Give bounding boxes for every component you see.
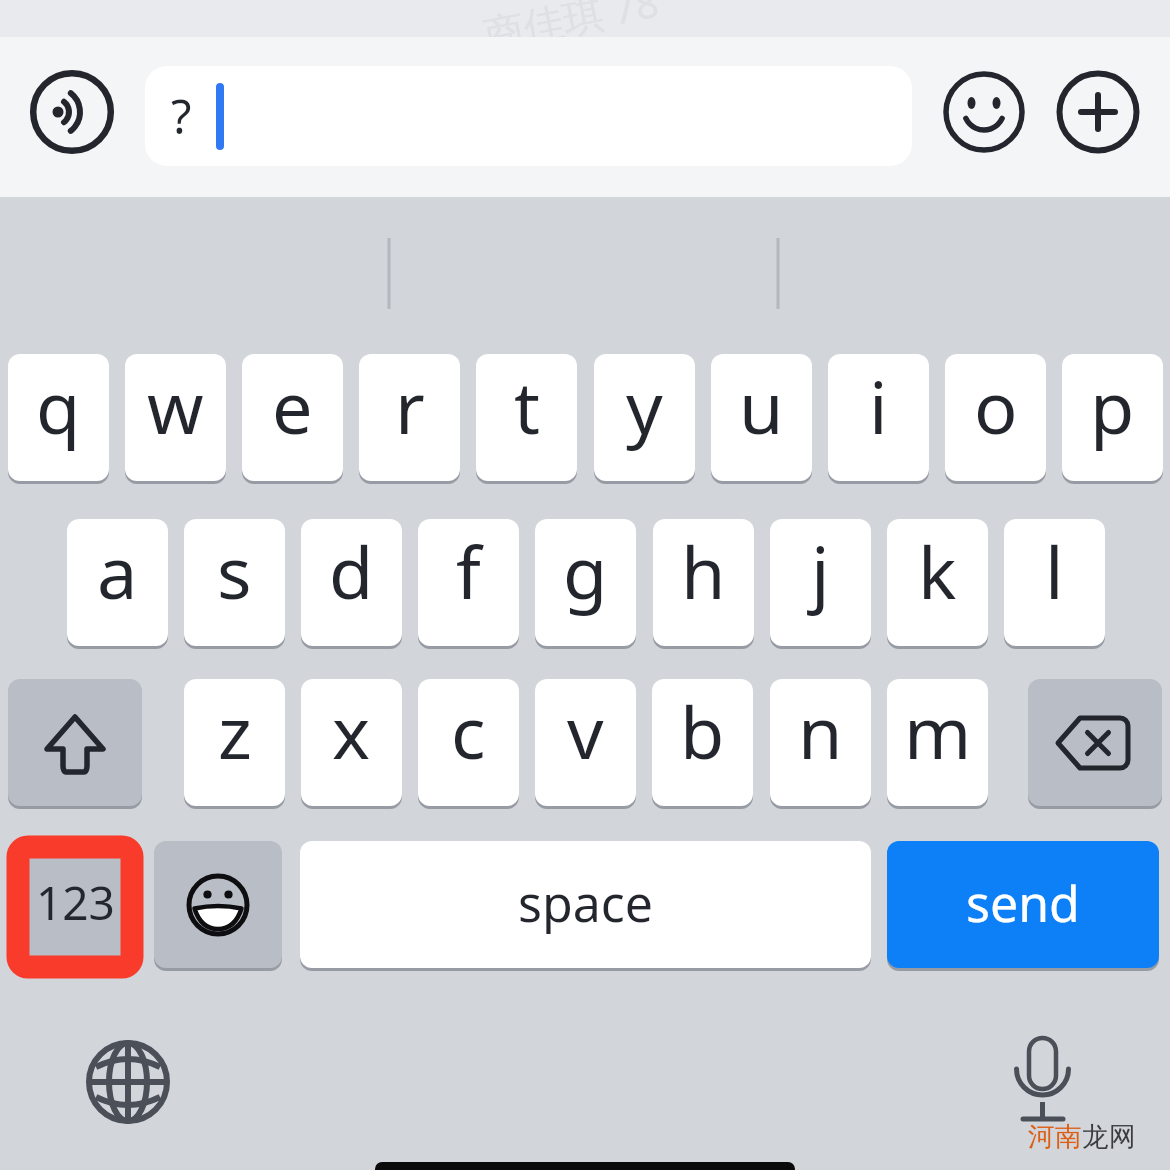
button[interactable]: z (184, 679, 285, 806)
staticText: n (798, 682, 843, 780)
button[interactable] (1058, 72, 1138, 152)
button[interactable]: m (887, 679, 988, 806)
staticText: b (680, 682, 725, 780)
staticText: z (218, 682, 252, 780)
staticText: i (869, 357, 888, 455)
staticText: 123 (36, 871, 115, 934)
button[interactable]: l (1004, 519, 1105, 646)
staticText: j (811, 522, 830, 620)
staticText: d (329, 522, 374, 620)
button[interactable]: h (653, 519, 754, 646)
staticText: e (272, 357, 313, 455)
button[interactable]: 123 (8, 841, 142, 968)
button[interactable]: b (652, 679, 753, 806)
staticText: h (681, 522, 726, 620)
button[interactable]: s (184, 519, 285, 646)
button[interactable] (8, 679, 142, 806)
button[interactable] (154, 841, 282, 968)
button[interactable]: g (535, 519, 636, 646)
staticText: p (1090, 357, 1135, 455)
staticText: y (626, 357, 663, 455)
button[interactable]: a (67, 519, 168, 646)
button[interactable]: j (770, 519, 871, 646)
button[interactable]: r (359, 354, 460, 481)
button[interactable]: q (8, 354, 109, 481)
button[interactable]: x (301, 679, 402, 806)
button[interactable] (32, 72, 112, 152)
button[interactable]: space (300, 841, 871, 968)
staticText: f (456, 522, 481, 620)
staticText: c (451, 682, 486, 780)
staticText: w (147, 357, 204, 455)
staticText: 河南 (1028, 1120, 1082, 1154)
staticText: v (567, 682, 604, 780)
button[interactable] (944, 72, 1024, 152)
button[interactable]: ? (145, 66, 912, 166)
button[interactable]: n (770, 679, 871, 806)
staticText: m (904, 682, 972, 780)
staticText: r (395, 357, 425, 455)
button[interactable] (1028, 679, 1162, 806)
button[interactable]: c (418, 679, 519, 806)
staticText: l (1045, 522, 1064, 620)
button[interactable]: v (535, 679, 636, 806)
button[interactable]: y (594, 354, 695, 481)
staticText: q (36, 357, 81, 455)
staticText: space (518, 869, 653, 937)
button[interactable]: t (476, 354, 577, 481)
staticText: s (217, 522, 252, 620)
staticText: g (563, 522, 608, 620)
button[interactable]: e (242, 354, 343, 481)
button[interactable]: u (711, 354, 812, 481)
button[interactable]: i (828, 354, 929, 481)
staticText: t (514, 357, 540, 455)
staticText: a (97, 522, 138, 620)
staticText: send (966, 869, 1080, 937)
staticText: 商佳琪 78 (479, 0, 664, 61)
button[interactable]: w (125, 354, 226, 481)
button[interactable] (88, 1042, 168, 1122)
button[interactable]: send (887, 841, 1159, 968)
staticText: ? (171, 84, 192, 148)
staticText: x (332, 682, 371, 780)
button[interactable]: p (1062, 354, 1163, 481)
staticText: 龙网 (1082, 1120, 1136, 1154)
staticText: u (739, 357, 784, 455)
button[interactable]: f (418, 519, 519, 646)
button[interactable] (1003, 1028, 1083, 1124)
staticText: o (974, 357, 1018, 455)
button[interactable]: o (945, 354, 1046, 481)
button[interactable]: d (301, 519, 402, 646)
button[interactable]: k (887, 519, 988, 646)
staticText: k (918, 522, 957, 620)
